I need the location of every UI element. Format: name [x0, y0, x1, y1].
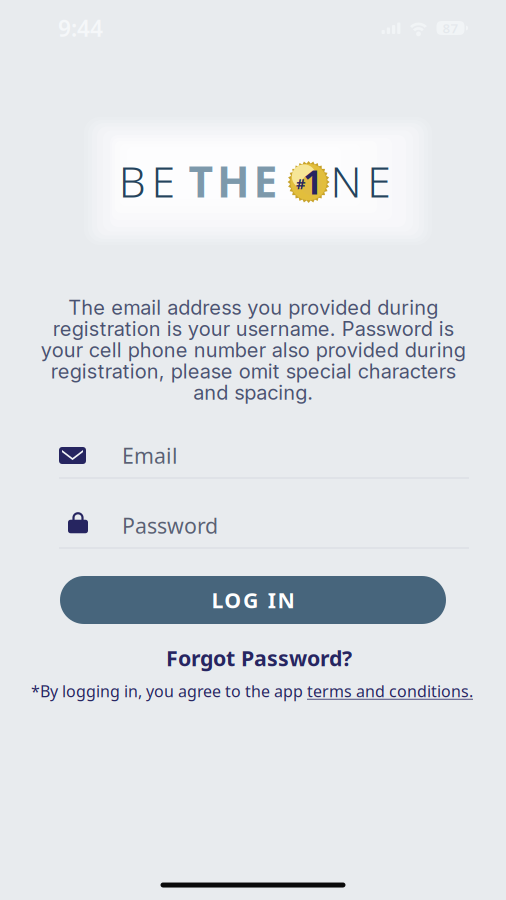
staticText: The email address you provided during re…	[40, 297, 465, 403]
staticText: 9:44	[58, 13, 103, 43]
staticText: BE	[119, 153, 175, 209]
staticText: #	[296, 174, 305, 193]
staticText: Password	[122, 511, 218, 540]
staticText: 1	[303, 159, 322, 204]
button[interactable]: *By logging in, you agree to the app	[31, 680, 473, 702]
staticText: terms and conditions.	[307, 680, 473, 702]
button[interactable]: Password	[59, 503, 469, 548]
staticText: Email	[122, 441, 178, 470]
staticText: THE	[188, 153, 278, 209]
staticText: LOG IN	[211, 586, 294, 614]
staticText: NE	[331, 153, 391, 209]
staticText: *By logging in, you agree to the app	[31, 680, 307, 702]
staticText: 87	[442, 19, 458, 37]
staticText: Forgot Password?	[166, 644, 352, 672]
button[interactable]: Forgot Password?	[166, 644, 352, 672]
button[interactable]: LOG IN	[60, 576, 446, 624]
button[interactable]: Email	[59, 433, 469, 478]
